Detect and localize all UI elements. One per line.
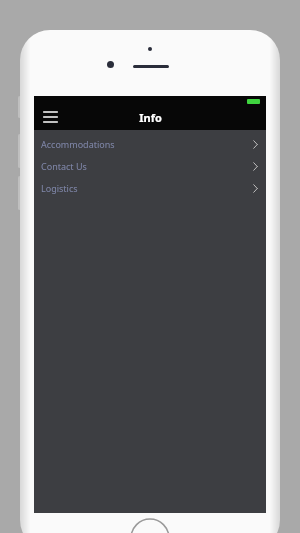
staticText: Contact Us [41,160,87,172]
other: Home [130,518,170,533]
button[interactable]: Logistics [34,177,266,199]
staticText: Accommodations [41,138,115,150]
staticText: Logistics [41,182,78,194]
button[interactable]: Contact Us [34,155,266,177]
button[interactable]: Open navigation menu [34,101,66,133]
button[interactable]: Accommodations [34,133,266,155]
staticText: Info [139,110,162,125]
